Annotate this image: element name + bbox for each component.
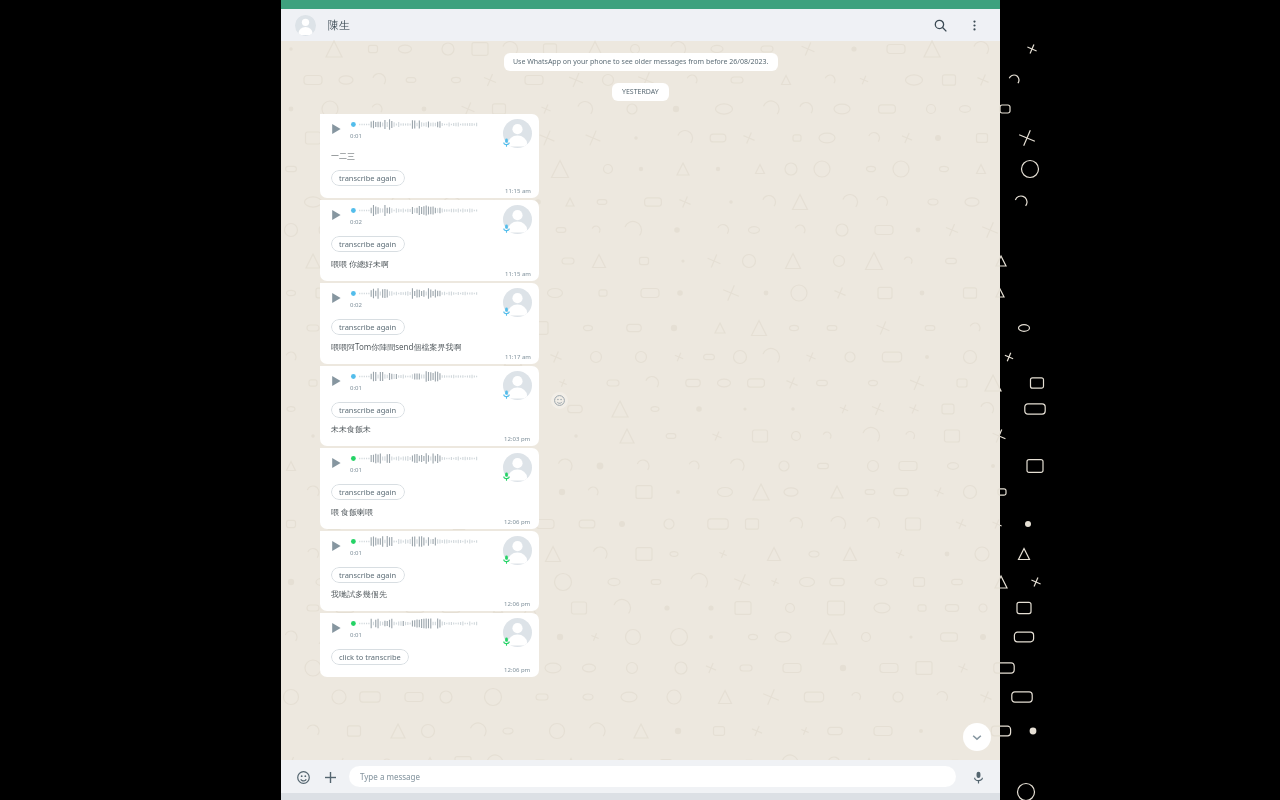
- staticText: 0:01: [350, 466, 362, 474]
- button[interactable]: Play voice message: [329, 374, 343, 388]
- staticText: 喂 食飯喇喂: [331, 506, 374, 517]
- staticText: 我哋試多幾個先: [331, 589, 387, 599]
- button[interactable]: transcribe again: [331, 567, 405, 583]
- button[interactable]: React to message: [551, 392, 568, 409]
- staticText: 喂喂阿Tom你陣間send個檔案畀我啊: [331, 341, 462, 352]
- button[interactable]: Play voice message: [320, 283, 539, 364]
- staticText: 0:01: [350, 384, 362, 392]
- staticText: 0:01: [350, 631, 362, 639]
- button[interactable]: Profile photo: [295, 15, 316, 36]
- staticText: 未未食飯未: [331, 424, 371, 434]
- button[interactable]: Play voice message: [320, 114, 539, 198]
- button[interactable]: Play voice message: [329, 122, 343, 136]
- button[interactable]: Record voice message: [968, 767, 988, 787]
- button[interactable]: Play voice message: [320, 613, 539, 677]
- staticText: transcribe again: [339, 173, 397, 183]
- button[interactable]: Play voice message: [329, 539, 343, 553]
- button[interactable]: transcribe again: [331, 484, 405, 500]
- button[interactable]: Play voice message: [329, 621, 343, 635]
- button[interactable]: Play voice message: [320, 200, 539, 281]
- staticText: 0:01: [350, 549, 362, 557]
- staticText: 一二三: [331, 151, 355, 161]
- staticText: 12:06 pm: [504, 600, 531, 608]
- staticText: 12:06 pm: [504, 518, 531, 526]
- button[interactable]: click to transcribe: [331, 649, 409, 665]
- staticText: transcribe again: [339, 405, 397, 415]
- staticText: 11:15 am: [505, 187, 531, 195]
- button[interactable]: Play voice message: [329, 291, 343, 305]
- staticText: transcribe again: [339, 239, 397, 249]
- button[interactable]: transcribe again: [331, 319, 405, 335]
- button[interactable]: transcribe again: [331, 236, 405, 252]
- button[interactable]: Play voice message: [329, 456, 343, 470]
- staticText: 11:17 am: [505, 353, 531, 361]
- staticText: 0:02: [350, 301, 362, 309]
- button[interactable]: Attach: [320, 767, 340, 787]
- staticText: 12:03 pm: [504, 435, 531, 443]
- staticText: Use WhatsApp on your phone to see older …: [513, 57, 769, 67]
- staticText: Type a message: [360, 771, 421, 782]
- button[interactable]: Scroll to bottom: [963, 723, 991, 751]
- staticText: 喂喂 你總好未啊: [331, 258, 390, 269]
- button[interactable]: transcribe again: [331, 402, 405, 418]
- staticText: YESTERDAY: [622, 87, 659, 97]
- staticText: 0:01: [350, 132, 362, 140]
- button[interactable]: transcribe again: [331, 170, 405, 186]
- staticText: 陳生: [328, 18, 350, 32]
- button[interactable]: Emoji: [293, 767, 313, 787]
- button[interactable]: More options: [962, 13, 986, 37]
- button[interactable]: Type a message: [349, 766, 956, 787]
- button[interactable]: Play voice message: [320, 531, 539, 611]
- button[interactable]: Play voice message: [320, 448, 539, 529]
- staticText: 12:06 pm: [504, 666, 531, 674]
- button[interactable]: Play voice message: [320, 366, 539, 446]
- button[interactable]: Search: [928, 13, 952, 37]
- staticText: transcribe again: [339, 487, 397, 497]
- button[interactable]: Play voice message: [329, 208, 343, 222]
- staticText: transcribe again: [339, 322, 397, 332]
- staticText: transcribe again: [339, 570, 397, 580]
- staticText: click to transcribe: [339, 652, 401, 662]
- staticText: 11:15 am: [505, 270, 531, 278]
- staticText: 0:02: [350, 218, 362, 226]
